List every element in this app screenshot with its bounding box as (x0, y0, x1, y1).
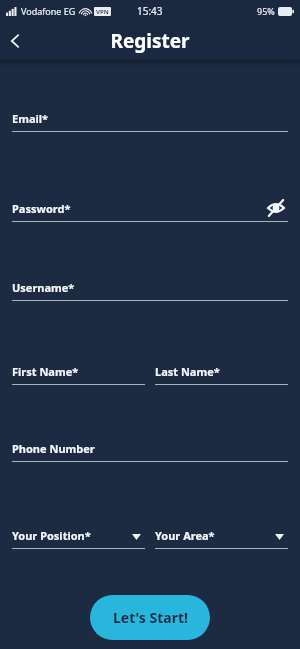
staticText: 95% (257, 5, 275, 17)
button[interactable]: Your Area* (155, 528, 288, 549)
staticText: Vodafone EG (21, 5, 76, 17)
staticText: Email* (12, 111, 49, 126)
button[interactable]: First Name* (12, 364, 145, 385)
button[interactable]: Username* (12, 280, 288, 301)
staticText: 15:43 (137, 4, 163, 18)
staticText: Username* (12, 280, 75, 295)
staticText: Password* (12, 201, 71, 216)
staticText: Phone Number (12, 441, 95, 456)
staticText: VPN (96, 8, 109, 16)
staticText: Your Position* (12, 528, 91, 543)
staticText: Your Area* (155, 528, 215, 543)
button[interactable]: Last Name* (155, 364, 288, 385)
button[interactable]: Phone Number (12, 441, 288, 462)
button[interactable]: Password* (12, 192, 288, 222)
button[interactable]: Let's Start! (90, 595, 210, 640)
staticText: Register (110, 28, 190, 54)
button[interactable]: Email* (12, 111, 288, 132)
staticText: First Name* (12, 364, 79, 379)
staticText: Last Name* (155, 364, 220, 379)
button[interactable]: Show password (264, 196, 288, 220)
button[interactable]: Your Position* (12, 528, 145, 549)
button[interactable]: Back (0, 26, 30, 56)
staticText: Let's Start! (113, 608, 188, 627)
